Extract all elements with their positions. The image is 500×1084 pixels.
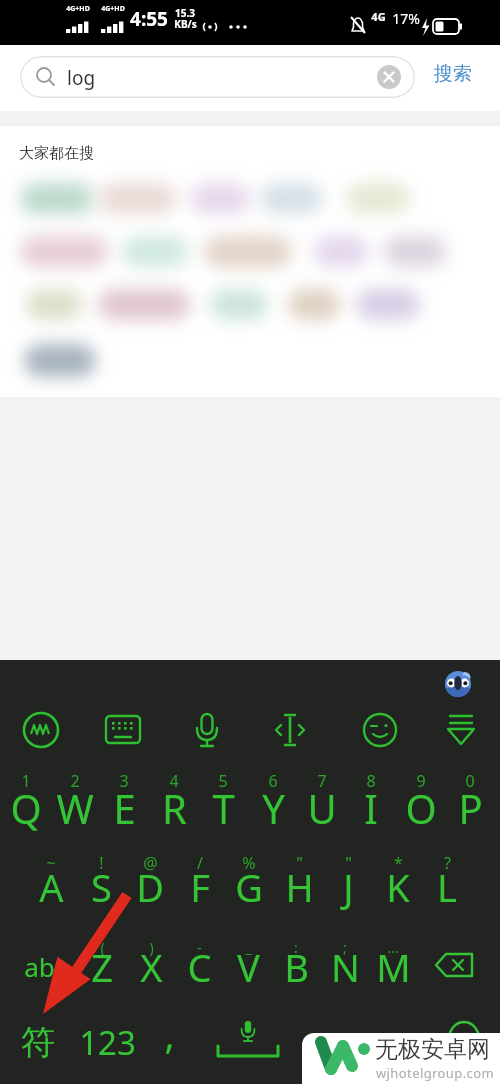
staticText: /: [197, 852, 203, 874]
staticText: (: [100, 938, 105, 957]
staticText: 2: [70, 770, 80, 792]
staticText: 6: [268, 770, 278, 792]
staticText: ): [149, 938, 154, 957]
button[interactable]: log: [20, 56, 415, 98]
staticText: 符: [21, 1021, 55, 1064]
button[interactable]: 无极安卓网: [302, 1033, 500, 1084]
staticText: 无极安卓网: [375, 1035, 490, 1064]
staticText: A: [39, 861, 64, 913]
staticText: D: [136, 861, 164, 913]
staticText: 搜索: [434, 62, 472, 86]
staticText: 17%: [392, 9, 420, 28]
staticText: @: [143, 852, 158, 874]
staticText: ~: [46, 852, 56, 874]
staticText: 9: [416, 770, 426, 792]
staticText: !: [99, 852, 104, 874]
staticText: 0: [465, 770, 475, 792]
staticText: 123: [79, 1020, 136, 1065]
button[interactable]: 搜索: [425, 54, 481, 94]
staticText: 1: [21, 770, 31, 792]
staticText: …: [387, 938, 399, 957]
staticText: G: [235, 861, 263, 913]
staticText: I: [364, 781, 378, 835]
staticText: Q: [10, 781, 42, 835]
staticText: 7: [317, 770, 327, 792]
staticText: J: [343, 861, 354, 913]
staticText: Y: [262, 781, 285, 835]
staticText: N: [331, 941, 360, 993]
staticText: F: [190, 861, 210, 913]
staticText: S: [91, 861, 112, 913]
staticText: H: [285, 861, 314, 913]
staticText: 15.3: [175, 6, 195, 20]
staticText: 8: [366, 770, 376, 792]
staticText: ?: [444, 852, 451, 874]
staticText: 4G+HD: [66, 4, 90, 14]
staticText: K: [386, 861, 410, 913]
staticText: R: [162, 781, 187, 835]
staticText: V: [237, 941, 260, 993]
staticText: ": [296, 852, 303, 874]
staticText: Z: [91, 941, 113, 993]
staticText: 5: [218, 770, 228, 792]
staticText: 3: [119, 770, 129, 792]
staticText: _: [245, 938, 252, 957]
staticText: W: [56, 781, 94, 835]
staticText: C: [187, 941, 212, 993]
staticText: E: [113, 781, 136, 835]
staticText: 4: [169, 770, 179, 792]
staticText: T: [212, 781, 235, 835]
staticText: 4G+HD: [101, 4, 125, 14]
staticText: :: [294, 938, 298, 957]
staticText: ;: [343, 938, 347, 957]
staticText: ab: [24, 949, 55, 984]
staticText: KB/s: [174, 17, 197, 31]
staticText: P: [458, 781, 483, 835]
staticText: *: [394, 852, 403, 874]
staticText: wjhotelgroup.com: [376, 1064, 494, 1082]
staticText: log: [67, 65, 96, 91]
staticText: ,: [164, 1008, 175, 1060]
staticText: M: [376, 941, 411, 993]
staticText: 4:55: [130, 6, 168, 32]
staticText: -: [197, 938, 202, 957]
staticText: X: [140, 941, 163, 993]
staticText: 大家都在搜: [19, 144, 94, 163]
staticText: U: [307, 781, 337, 835]
staticText: ": [345, 852, 352, 874]
staticText: O: [405, 781, 437, 835]
staticText: 4G: [371, 9, 386, 24]
staticText: %: [242, 852, 256, 874]
staticText: B: [284, 941, 309, 993]
staticText: L: [437, 861, 457, 913]
